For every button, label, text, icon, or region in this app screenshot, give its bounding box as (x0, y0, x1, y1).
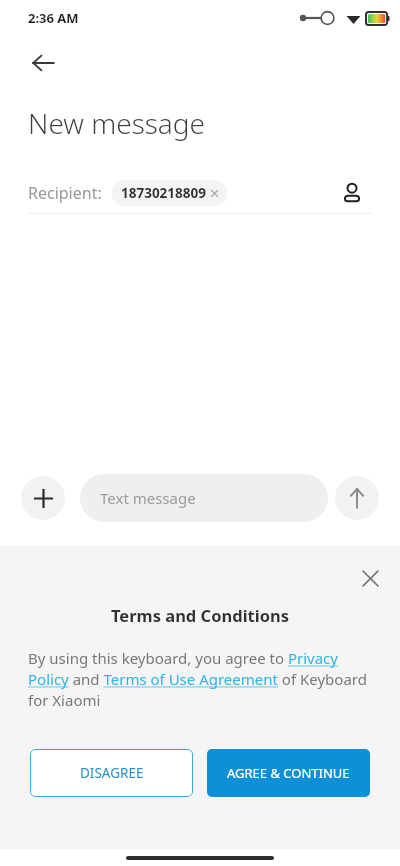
button[interactable]: Text message (80, 474, 328, 522)
button[interactable]: Back (22, 42, 64, 84)
staticText: Terms and Conditions (111, 604, 289, 626)
staticText: By using this keyboard, you agree to Pri… (28, 648, 372, 711)
staticText: DISAGREE (80, 764, 144, 782)
button[interactable]: Send (335, 476, 379, 520)
staticText: AGREE & CONTINUE (227, 764, 350, 782)
button[interactable]: 18730218809 (112, 180, 227, 206)
staticText: Recipient: (28, 182, 102, 204)
button[interactable]: Close (350, 558, 390, 598)
staticText: 18730218809 (121, 184, 206, 202)
staticText: New message (28, 104, 206, 142)
button[interactable]: AGREE & CONTINUE (207, 749, 370, 797)
staticText: 2:36 AM (28, 9, 79, 27)
staticText: Text message (100, 488, 196, 508)
button[interactable]: Add attachment (21, 476, 65, 520)
button[interactable]: Choose contact (332, 173, 372, 213)
button[interactable]: DISAGREE (30, 749, 193, 797)
